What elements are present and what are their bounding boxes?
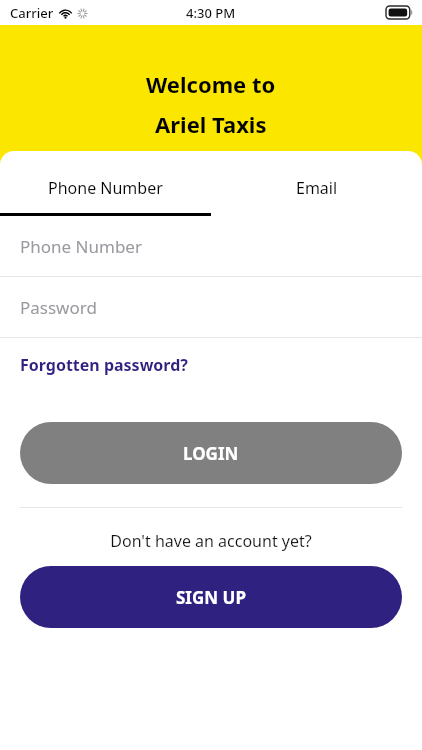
button[interactable]: LOGIN <box>20 422 402 484</box>
staticText: Password <box>20 296 97 319</box>
button[interactable]: Forgotten password? <box>20 354 188 376</box>
staticText: Forgotten password? <box>20 354 188 376</box>
other: Battery full <box>386 6 413 19</box>
other: Wi-Fi <box>59 7 72 20</box>
staticText: Don't have an account yet? <box>0 530 422 552</box>
staticText: SIGN UP <box>176 586 246 609</box>
staticText: Carrier <box>10 4 54 22</box>
staticText: Email <box>296 177 338 199</box>
staticText: Phone Number <box>20 235 142 258</box>
button[interactable]: Phone Number <box>0 165 211 211</box>
staticText: Ariel Taxis <box>155 109 267 139</box>
button[interactable]: Phone Number <box>0 216 422 277</box>
button[interactable]: Password <box>0 277 422 338</box>
staticText: 4:30 PM <box>186 4 236 22</box>
button[interactable]: Email <box>211 165 422 211</box>
staticText: Phone Number <box>48 177 163 199</box>
other: Activity <box>77 8 88 19</box>
staticText: LOGIN <box>183 442 239 465</box>
button[interactable]: SIGN UP <box>20 566 402 628</box>
staticText: Welcome to <box>146 69 276 99</box>
